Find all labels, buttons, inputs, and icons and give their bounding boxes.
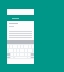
button[interactable]: Navigation menu [7, 15, 34, 21]
